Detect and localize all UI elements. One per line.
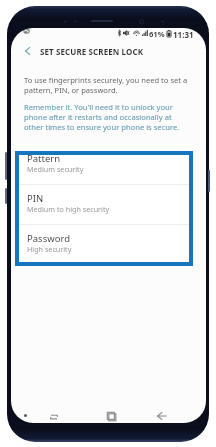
staticText: 11:31 bbox=[173, 29, 194, 40]
staticText: High security bbox=[27, 244, 72, 254]
button[interactable]: Recent apps bbox=[43, 406, 65, 423]
button[interactable]: Password bbox=[18, 225, 190, 254]
staticText: Password bbox=[27, 232, 70, 245]
staticText: 61% bbox=[149, 29, 165, 39]
staticText: Pattern bbox=[27, 154, 61, 165]
button[interactable]: Back bbox=[151, 405, 173, 423]
button[interactable]: Pattern bbox=[18, 154, 190, 185]
button[interactable]: PIN bbox=[18, 185, 190, 225]
staticText: To use fingerprints securely, you need t… bbox=[24, 75, 188, 95]
staticText: Medium security bbox=[27, 164, 84, 174]
button[interactable]: Home bbox=[100, 405, 122, 423]
staticText: SET SECURE SCREEN LOCK bbox=[40, 46, 144, 57]
staticText: Medium to high security bbox=[27, 204, 110, 214]
staticText: PIN bbox=[27, 192, 44, 205]
button[interactable]: Navigate up bbox=[17, 41, 37, 61]
staticText: Remember it. You'll need it to unlock yo… bbox=[24, 102, 180, 132]
